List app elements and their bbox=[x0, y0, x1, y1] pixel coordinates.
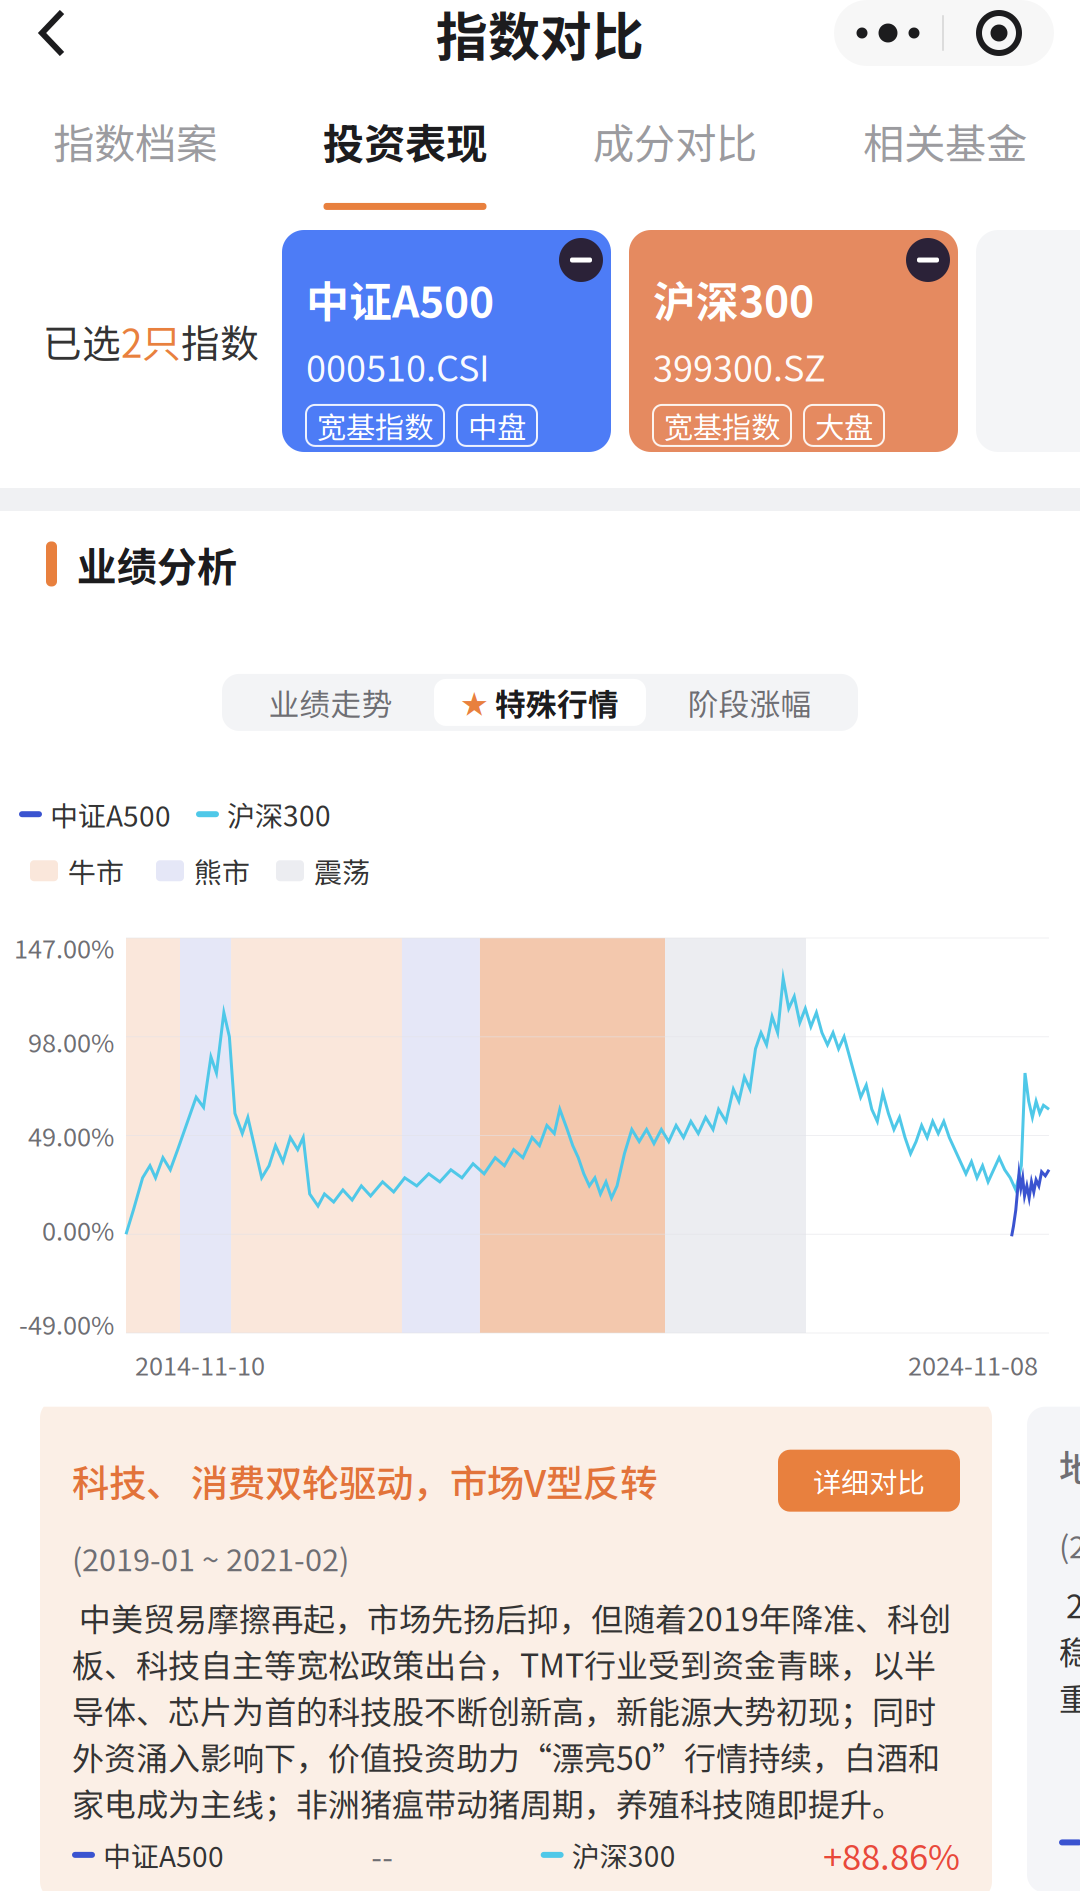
staticText: 2014-11-10 bbox=[135, 1346, 265, 1383]
button[interactable]: 相关基金 bbox=[810, 66, 1080, 205]
button[interactable]: 成分对比 bbox=[540, 66, 810, 205]
staticText: 中证A500 bbox=[50, 794, 171, 834]
button[interactable]: Back bbox=[0, 0, 94, 66]
staticText: 业绩走势 bbox=[268, 680, 392, 725]
button[interactable]: ★ bbox=[434, 679, 646, 726]
staticText: 业绩分析 bbox=[77, 535, 237, 593]
staticText: 沪深300 bbox=[227, 794, 331, 834]
button[interactable]: 详细对比 bbox=[778, 1450, 960, 1512]
staticText: 2只 bbox=[121, 313, 181, 369]
button[interactable]: 沪深300 bbox=[629, 230, 958, 452]
staticText: 沪深300 bbox=[653, 268, 814, 330]
staticText: 2022年上半年，受外部环境影响，A股市场显著调整，随后在稳增长政策推动下，20… bbox=[1059, 1581, 1080, 1720]
staticText: 宽基指数 bbox=[664, 404, 780, 447]
staticText: 49.00% bbox=[28, 1117, 114, 1154]
button[interactable]: 投资表现 bbox=[270, 66, 540, 205]
staticText: 已选 bbox=[43, 313, 121, 369]
staticText: +88.86% bbox=[823, 1830, 960, 1880]
button[interactable]: 指数档案 bbox=[0, 66, 270, 205]
staticText: -49.00% bbox=[19, 1305, 114, 1342]
button[interactable]: More bbox=[834, 0, 942, 66]
staticText: 特殊行情 bbox=[495, 680, 619, 725]
staticText: 地产刺激政策提振，公募基金赎回潮特征显现 bbox=[1059, 1439, 1080, 1493]
staticText: 大盘 bbox=[815, 404, 873, 447]
staticText: -- bbox=[371, 1833, 393, 1877]
staticText: 98.00% bbox=[28, 1023, 114, 1060]
staticText: 详细对比 bbox=[813, 1460, 925, 1501]
staticText: 中盘 bbox=[468, 404, 526, 447]
staticText: 中证A500 bbox=[103, 1835, 224, 1875]
button[interactable]: Close bbox=[944, 0, 1054, 66]
staticText: 399300.SZ bbox=[653, 340, 826, 392]
staticText: 指数档案 bbox=[53, 111, 217, 171]
staticText: 牛市 bbox=[68, 850, 124, 891]
button[interactable]: 业绩走势 bbox=[227, 679, 434, 726]
staticText: 2024-11-08 bbox=[908, 1346, 1038, 1383]
staticText: 0.00% bbox=[42, 1211, 114, 1248]
staticText: 指数 bbox=[181, 313, 259, 369]
staticText: 投资表现 bbox=[323, 111, 487, 171]
staticText: 000510.CSI bbox=[306, 340, 490, 392]
button[interactable]: 阶段涨幅 bbox=[646, 679, 853, 726]
staticText: 成分对比 bbox=[593, 111, 757, 171]
staticText: 中证A500 bbox=[306, 268, 494, 330]
staticText: 阶段涨幅 bbox=[687, 680, 811, 725]
staticText: 震荡 bbox=[314, 850, 370, 891]
staticText: 指数对比 bbox=[436, 0, 644, 71]
staticText: 科技、 消费双轮驱动，市场V型反转 bbox=[72, 1454, 657, 1508]
staticText: 宽基指数 bbox=[317, 404, 433, 447]
button[interactable]: 中证A500 bbox=[282, 230, 611, 452]
staticText: 中美贸易摩擦再起，市场先扬后抑，但随着2019年降准、科创板、科技自主等宽松政策… bbox=[72, 1594, 951, 1826]
staticText: (2019-01 ~ 2021-02) bbox=[72, 1536, 349, 1580]
staticText: 熊市 bbox=[194, 850, 250, 891]
staticText: 147.00% bbox=[14, 929, 114, 966]
staticText: ★ bbox=[461, 683, 488, 722]
staticText: 相关基金 bbox=[863, 111, 1027, 171]
staticText: 沪深300 bbox=[572, 1835, 676, 1875]
staticText: (2022-04 ~ 2022-07) bbox=[1059, 1523, 1080, 1567]
